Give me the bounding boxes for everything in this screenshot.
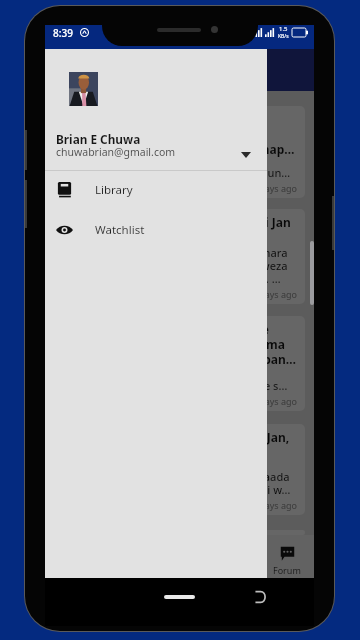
staticText: Matokeo ya uchaguzi uliofanyika Jan, (66, 429, 290, 445)
staticText: Library (95, 182, 133, 198)
button[interactable]: Forum (260, 538, 314, 576)
button[interactable]: Profile photo (69, 72, 98, 106)
staticText: chuwabrian@gmail.com (56, 145, 176, 159)
staticText: Forum (273, 564, 301, 576)
staticText: Nini maoni yako kuhusu suala la vijana w… (66, 111, 297, 157)
staticText: 5 days ago (66, 395, 297, 407)
button[interactable]: Matokeo ya uchaguzi uliofanyika Jan, (54, 424, 305, 515)
staticText: 2 days ago (66, 182, 297, 194)
button[interactable]: Uchaguzi mkuu utafanyika mwezi Jan (54, 209, 305, 304)
staticText: Matokeo ya uchaguzi yatatangazwa baada y… (66, 469, 297, 497)
button[interactable]: Orodha mpya ya makampuni yote yaliyopewa… (54, 316, 305, 411)
staticText: Uchaguzi mkuu utafanyika mwezi Jan (66, 214, 291, 230)
staticText: Brian E Chuwa (56, 131, 141, 147)
staticText: Habari hii ni ya kweli kabisa ambayo tum… (66, 152, 297, 180)
staticText: 7 days ago (66, 499, 297, 511)
staticText: 3 days ago (66, 288, 297, 300)
button[interactable]: Back (254, 590, 266, 603)
staticText: Watchlist (95, 222, 145, 238)
button[interactable]: Watchlist (45, 210, 267, 250)
button[interactable]: Habari njema kwa wote waliojiandikisha (54, 530, 305, 535)
button[interactable]: Home (164, 595, 195, 599)
button[interactable]: Library (45, 170, 267, 210)
button[interactable]: Switch account (229, 138, 263, 172)
button[interactable]: Nini maoni yako kuhusu suala la vijana w… (54, 106, 305, 198)
staticText: 1.5 (279, 25, 288, 33)
staticText: KB/s (278, 33, 289, 40)
staticText: Uchaguzi mkuu utafanyika tena kwa mara y… (66, 245, 297, 286)
staticText: 8:39 (53, 26, 73, 40)
staticText: Orodha mpya ya makampuni yote yaliyopewa… (66, 321, 297, 367)
staticText: Kampuni zilizoshinda zabuni hizo zimetan… (66, 365, 297, 393)
